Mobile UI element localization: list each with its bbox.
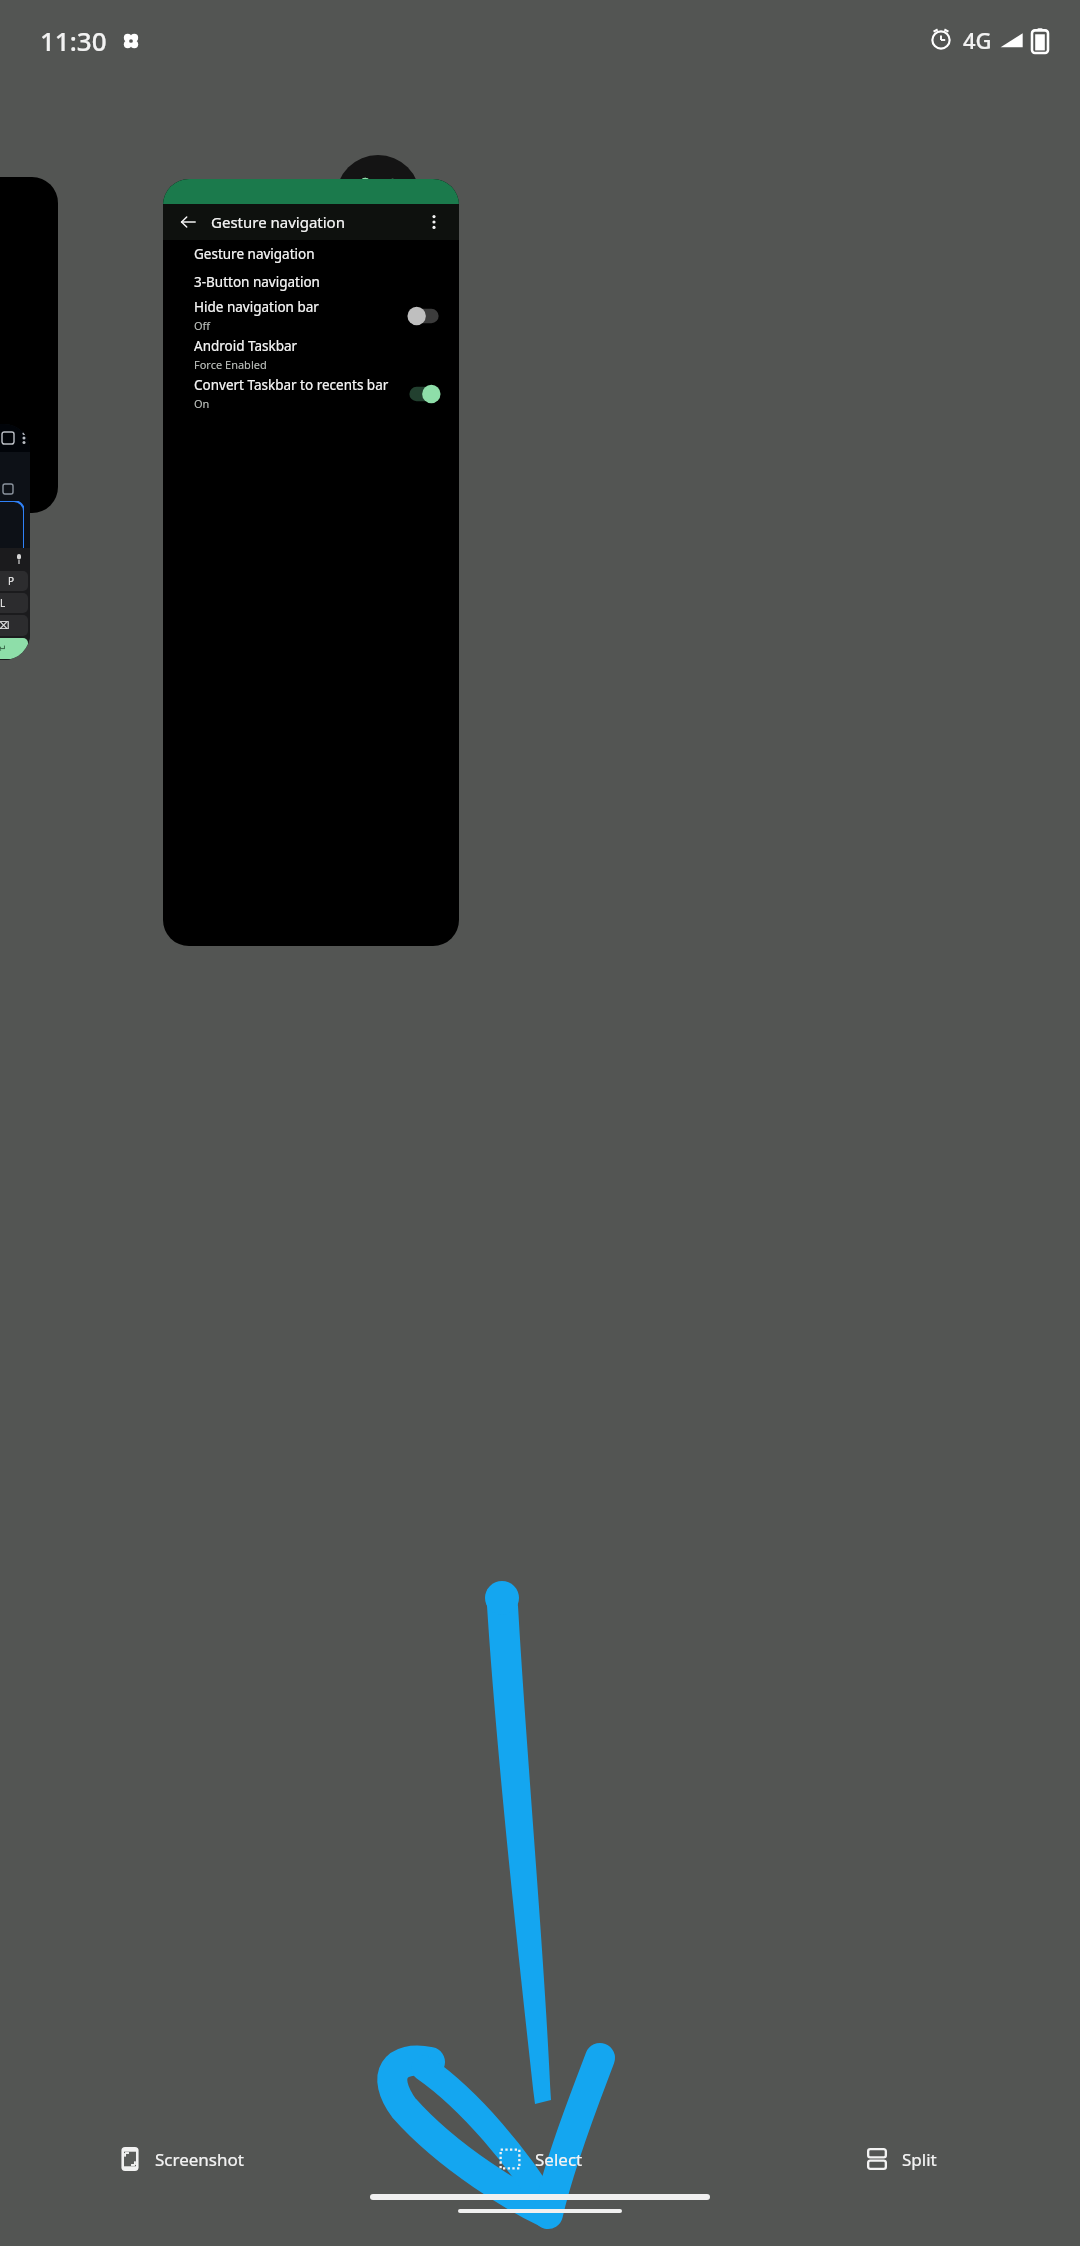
staticText: Off	[194, 318, 211, 333]
staticText: Gesture navigation	[194, 245, 315, 263]
staticText: ⌫	[0, 620, 10, 632]
button[interactable]: Hide navigation bar	[163, 296, 459, 335]
button[interactable]: Android Taskbar	[163, 335, 459, 374]
staticText: On	[194, 396, 210, 411]
button[interactable]: More options	[421, 209, 447, 235]
other: App icon	[336, 155, 420, 239]
staticText: P	[8, 574, 15, 588]
button[interactable]: Screenshot	[0, 2124, 360, 2194]
staticText: Convert Taskbar to recents bar	[194, 376, 389, 394]
staticText: Screenshot	[155, 2148, 244, 2171]
button[interactable]	[0, 177, 58, 513]
staticText: Gesture navigation	[211, 212, 345, 232]
button[interactable]: Back	[175, 209, 201, 235]
staticText: Select	[535, 2148, 583, 2171]
staticText: ↵	[0, 643, 7, 655]
button[interactable]: uting guidelines.	[0, 424, 30, 660]
button[interactable]: Convert Taskbar to recents bar	[163, 374, 459, 413]
button[interactable]: Convert Taskbar to recents bar toggle	[407, 384, 441, 404]
staticText: Hide navigation bar	[194, 298, 319, 316]
staticText: Android Taskbar	[194, 337, 298, 355]
button[interactable]: Split	[720, 2124, 1080, 2194]
button[interactable]: 3-Button navigation	[163, 268, 459, 296]
staticText: Split	[902, 2148, 937, 2171]
staticText: 11:30	[40, 23, 107, 58]
staticText: 4G	[963, 25, 992, 55]
button[interactable]: Select	[360, 2124, 720, 2194]
button[interactable]: Gesture navigation	[163, 240, 459, 268]
button[interactable]: Hide navigation bar toggle	[407, 306, 441, 326]
staticText: Force Enabled	[194, 357, 267, 372]
staticText: L	[0, 596, 6, 610]
staticText: 3-Button navigation	[194, 273, 320, 291]
